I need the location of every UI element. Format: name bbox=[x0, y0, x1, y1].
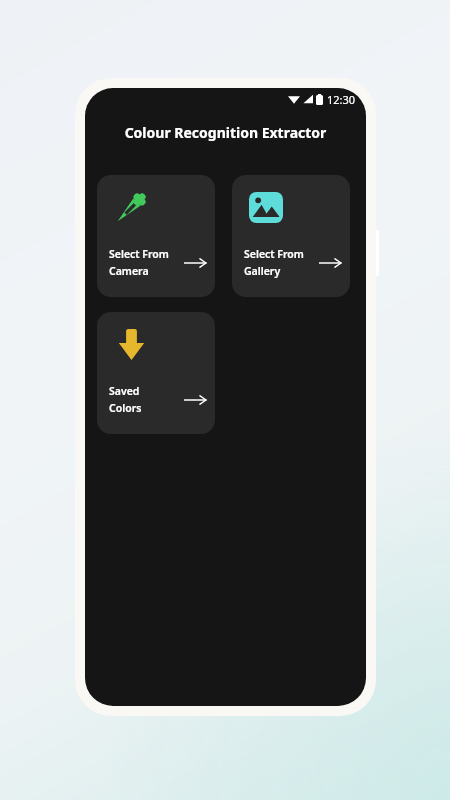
staticText: Colour Recognition Extractor bbox=[85, 123, 366, 142]
staticText: Saved bbox=[109, 384, 140, 398]
staticText: Gallery bbox=[244, 264, 281, 278]
staticText: Colors bbox=[109, 401, 142, 415]
staticText: Select From bbox=[244, 247, 304, 261]
button[interactable]: Saved Colors bbox=[97, 312, 215, 434]
staticText: 12:30 bbox=[327, 92, 356, 107]
button[interactable]: Select From Gallery bbox=[232, 175, 350, 297]
button[interactable]: Select From Camera bbox=[97, 175, 215, 297]
staticText: Select From bbox=[109, 247, 169, 261]
staticText: Camera bbox=[109, 264, 149, 278]
